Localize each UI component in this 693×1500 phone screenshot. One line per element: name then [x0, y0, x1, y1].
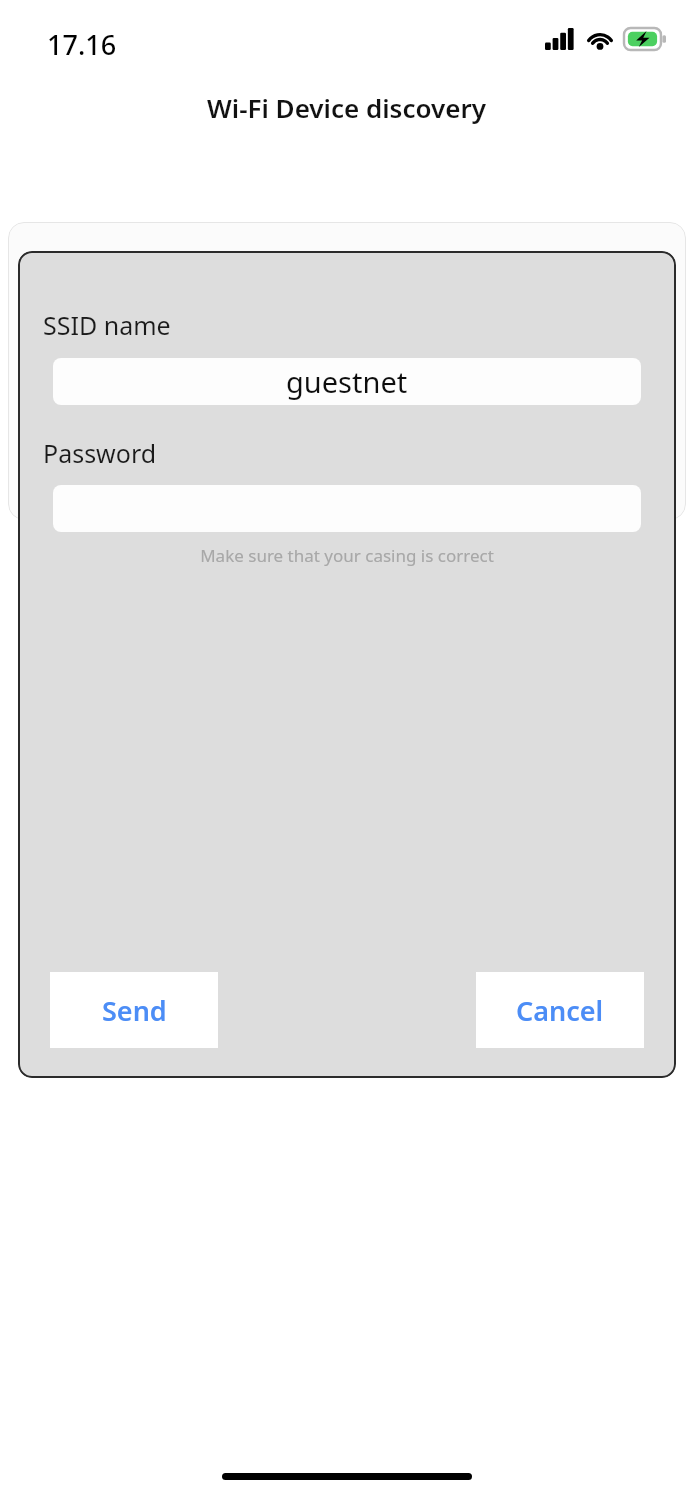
staticText: Wi-Fi Device — [217, 344, 477, 407]
button[interactable]: Send — [50, 972, 218, 1048]
staticText: Make sure that your casing is correct — [200, 544, 494, 567]
staticText: Wi-Fi Device discovery — [207, 90, 486, 125]
button[interactable]: Cancel — [476, 972, 644, 1048]
staticText: 17.16 — [47, 26, 117, 63]
button[interactable]: guestnet — [53, 358, 641, 405]
staticText: Send — [102, 992, 167, 1029]
other: Battery charging — [624, 28, 666, 50]
staticText: Cancel — [516, 992, 604, 1029]
staticText: SSID name — [43, 308, 171, 342]
staticText: Password — [43, 436, 157, 470]
staticText: guestnet — [286, 362, 408, 401]
